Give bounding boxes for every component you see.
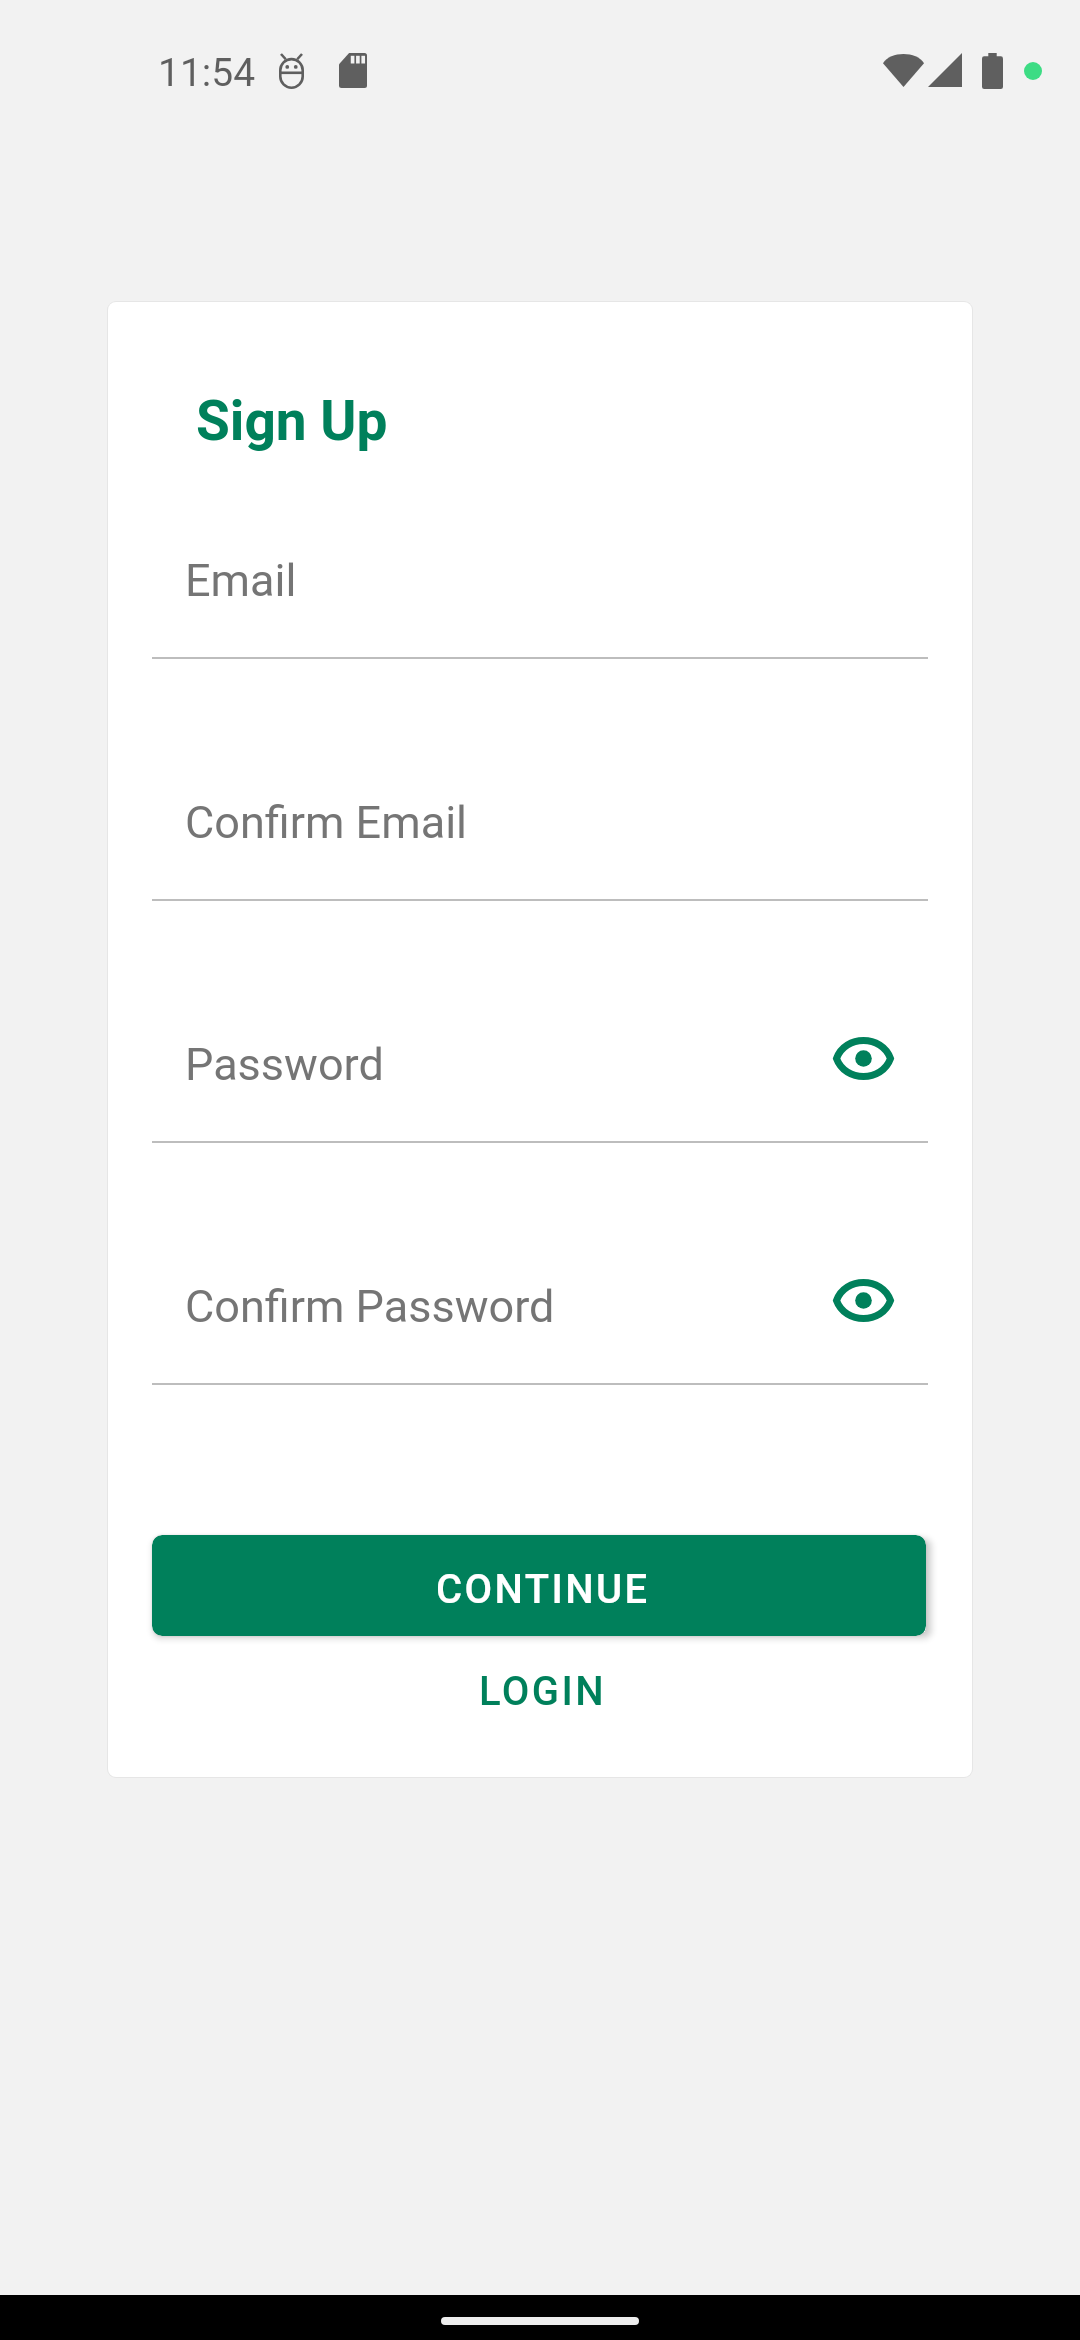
button[interactable]: CONTINUE [152, 1535, 926, 1636]
staticText: Email [185, 554, 297, 607]
button[interactable]: Show Confirm Password [827, 1264, 899, 1336]
staticText: CONTINUE [436, 1566, 650, 1613]
button[interactable]: Password [152, 1011, 928, 1143]
button[interactable]: Show Password [827, 1022, 899, 1094]
button[interactable]: Confirm Password [152, 1253, 928, 1385]
staticText: 11:54 [158, 50, 256, 96]
staticText: LOGIN [479, 1668, 606, 1715]
button[interactable]: Confirm Email [152, 769, 928, 901]
staticText: Confirm Password [185, 1280, 555, 1333]
button[interactable]: LOGIN [155, 1643, 929, 1739]
staticText: Confirm Email [185, 796, 468, 849]
staticText: Sign Up [196, 389, 388, 453]
button[interactable]: Email [152, 527, 928, 659]
staticText: Password [185, 1038, 384, 1091]
